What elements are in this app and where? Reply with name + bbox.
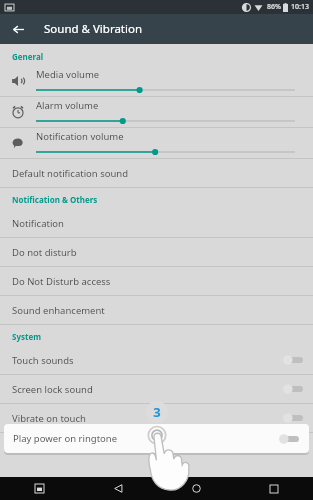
button[interactable]: Vibrate on touch — [0, 404, 313, 432]
staticText: Notification volume — [36, 130, 124, 143]
staticText: Screen lock sound — [12, 383, 283, 396]
button[interactable]: Play power on ringtone — [4, 424, 309, 453]
staticText: Do Not Disturb access — [12, 275, 111, 288]
button[interactable]: Notification volume — [0, 128, 313, 158]
button[interactable]: Screen lock sound — [0, 375, 313, 403]
staticText: Do not disturb — [12, 246, 77, 259]
button[interactable]: Back — [79, 477, 157, 500]
staticText: Touch sounds — [12, 354, 283, 367]
button[interactable]: Default notification sound — [0, 159, 313, 187]
button[interactable]: Screenshot — [0, 477, 79, 500]
staticText: Notification — [12, 217, 64, 230]
staticText: Media volume — [36, 68, 100, 81]
staticText: Alarm volume — [36, 99, 99, 112]
staticText: Sound & Vibration — [44, 21, 143, 37]
staticText: Sound enhancement — [12, 304, 105, 317]
button[interactable]: Notification — [0, 209, 313, 237]
button[interactable]: Sound enhancement — [0, 296, 313, 324]
staticText: 10:13 — [291, 2, 309, 12]
button[interactable]: Touch sounds — [0, 346, 313, 374]
staticText: Vibrate on touch — [12, 412, 283, 425]
staticText: Default notification sound — [12, 167, 129, 180]
staticText: Notification & Others — [12, 194, 98, 205]
staticText: System — [12, 331, 42, 342]
button[interactable]: Home — [157, 477, 235, 500]
button[interactable]: Do not disturb — [0, 238, 313, 266]
button[interactable]: Do Not Disturb access — [0, 267, 313, 295]
staticText: 86% — [267, 2, 281, 12]
staticText: 3 — [153, 403, 161, 421]
button[interactable]: Back — [6, 17, 30, 41]
button[interactable]: Recent apps — [235, 477, 313, 500]
button[interactable]: Alarm volume — [0, 97, 313, 127]
staticText: General — [12, 51, 44, 62]
staticText: Play power on ringtone — [13, 432, 279, 445]
button[interactable]: Media volume — [0, 66, 313, 96]
